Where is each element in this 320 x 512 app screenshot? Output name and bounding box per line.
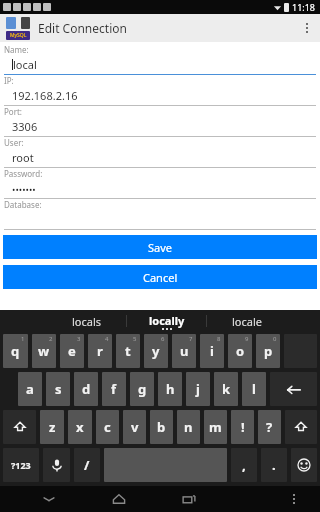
staticText: s <box>55 380 62 398</box>
staticText: x <box>76 418 84 436</box>
button[interactable]: v <box>123 410 146 444</box>
button[interactable]: locale <box>207 310 286 332</box>
button[interactable]: h <box>158 372 182 406</box>
staticText: Cancel <box>143 270 178 285</box>
button[interactable]: ! <box>231 410 254 444</box>
staticText: 5 <box>133 335 137 343</box>
button[interactable]: ?123 <box>3 448 39 482</box>
staticText: ?123 <box>11 459 31 471</box>
button[interactable]: b <box>150 410 173 444</box>
button[interactable]: Shift <box>285 410 317 444</box>
staticText: . <box>272 456 276 474</box>
button[interactable]: Save <box>3 235 317 259</box>
button[interactable]: d <box>74 372 98 406</box>
staticText: g <box>138 380 147 398</box>
staticText: a <box>26 380 34 398</box>
staticText: 0 <box>273 335 277 343</box>
button[interactable]: c <box>96 410 119 444</box>
button[interactable]: locally <box>127 310 206 332</box>
button[interactable]: 3306 <box>4 117 316 136</box>
button[interactable]: Recent apps <box>168 486 209 512</box>
button[interactable]: Emoji <box>291 448 317 482</box>
staticText: t <box>125 342 131 360</box>
staticText: u <box>180 342 189 360</box>
staticText: v <box>131 418 139 436</box>
button[interactable]: Enter <box>270 372 317 406</box>
staticText: 11:18 <box>292 1 316 13</box>
button[interactable]: o <box>228 334 252 368</box>
button[interactable]: y <box>144 334 168 368</box>
button[interactable]: t <box>116 334 140 368</box>
button[interactable]: e <box>60 334 84 368</box>
button[interactable]: j <box>186 372 210 406</box>
staticText: 1 <box>21 335 25 343</box>
button[interactable]: . <box>261 448 287 482</box>
button[interactable]: local <box>4 55 316 74</box>
staticText: w <box>38 342 50 360</box>
button[interactable]: More options <box>279 486 308 512</box>
button[interactable]: k <box>214 372 238 406</box>
staticText: p <box>264 342 273 360</box>
button[interactable]: f <box>102 372 126 406</box>
staticText: c <box>104 418 111 436</box>
staticText: Save <box>148 240 173 255</box>
button[interactable]: Voice input <box>43 448 70 482</box>
staticText: m <box>209 418 222 436</box>
staticText: e <box>68 342 76 360</box>
button[interactable]: i <box>200 334 224 368</box>
staticText: o <box>236 342 245 360</box>
button[interactable]: p <box>256 334 280 368</box>
staticText: r <box>97 342 103 360</box>
staticText: Name: <box>4 44 29 55</box>
button[interactable]: w <box>32 334 56 368</box>
button[interactable]: m <box>204 410 227 444</box>
button[interactable]: g <box>130 372 154 406</box>
staticText: 9 <box>245 335 249 343</box>
staticText: Password: <box>4 168 43 179</box>
staticText: Database: <box>4 199 42 210</box>
staticText: / <box>84 456 90 474</box>
staticText: z <box>49 418 56 436</box>
button[interactable]: More options <box>294 14 320 42</box>
button[interactable]: Shift <box>3 410 36 444</box>
staticText: h <box>166 380 175 398</box>
button[interactable]: locals <box>48 310 126 332</box>
button[interactable]: a <box>18 372 42 406</box>
button[interactable]: z <box>40 410 64 444</box>
staticText: ! <box>241 418 245 436</box>
button[interactable]: s <box>46 372 70 406</box>
staticText: MySQL <box>10 32 27 39</box>
staticText: 2 <box>49 335 53 343</box>
staticText: ••••••• <box>12 183 36 195</box>
button[interactable]: ••••••• <box>4 179 316 198</box>
staticText: y <box>152 342 160 360</box>
button[interactable]: ? <box>258 410 281 444</box>
button[interactable]: l <box>242 372 266 406</box>
button[interactable]: Home <box>98 486 139 512</box>
button[interactable]: root <box>4 148 316 167</box>
staticText: Port: <box>4 106 23 117</box>
staticText: root <box>12 150 34 165</box>
button[interactable]: x <box>68 410 92 444</box>
button[interactable]: Cancel <box>3 265 317 289</box>
button[interactable]: q <box>3 334 28 368</box>
staticText: local <box>13 57 37 72</box>
button[interactable]: 192.168.2.16 <box>4 86 316 105</box>
staticText: q <box>11 342 20 360</box>
staticText: d <box>82 380 91 398</box>
button[interactable]: Hide keyboard <box>28 486 69 512</box>
staticText: n <box>184 418 193 436</box>
button[interactable]: / <box>74 448 100 482</box>
button[interactable]: r <box>88 334 112 368</box>
staticText: 4 <box>105 335 109 343</box>
staticText: 3 <box>77 335 81 343</box>
staticText: User: <box>4 137 24 148</box>
button[interactable]: , <box>231 448 257 482</box>
button[interactable]: n <box>177 410 200 444</box>
staticText: f <box>111 380 117 398</box>
staticText: b <box>157 418 166 436</box>
button[interactable]: u <box>172 334 196 368</box>
